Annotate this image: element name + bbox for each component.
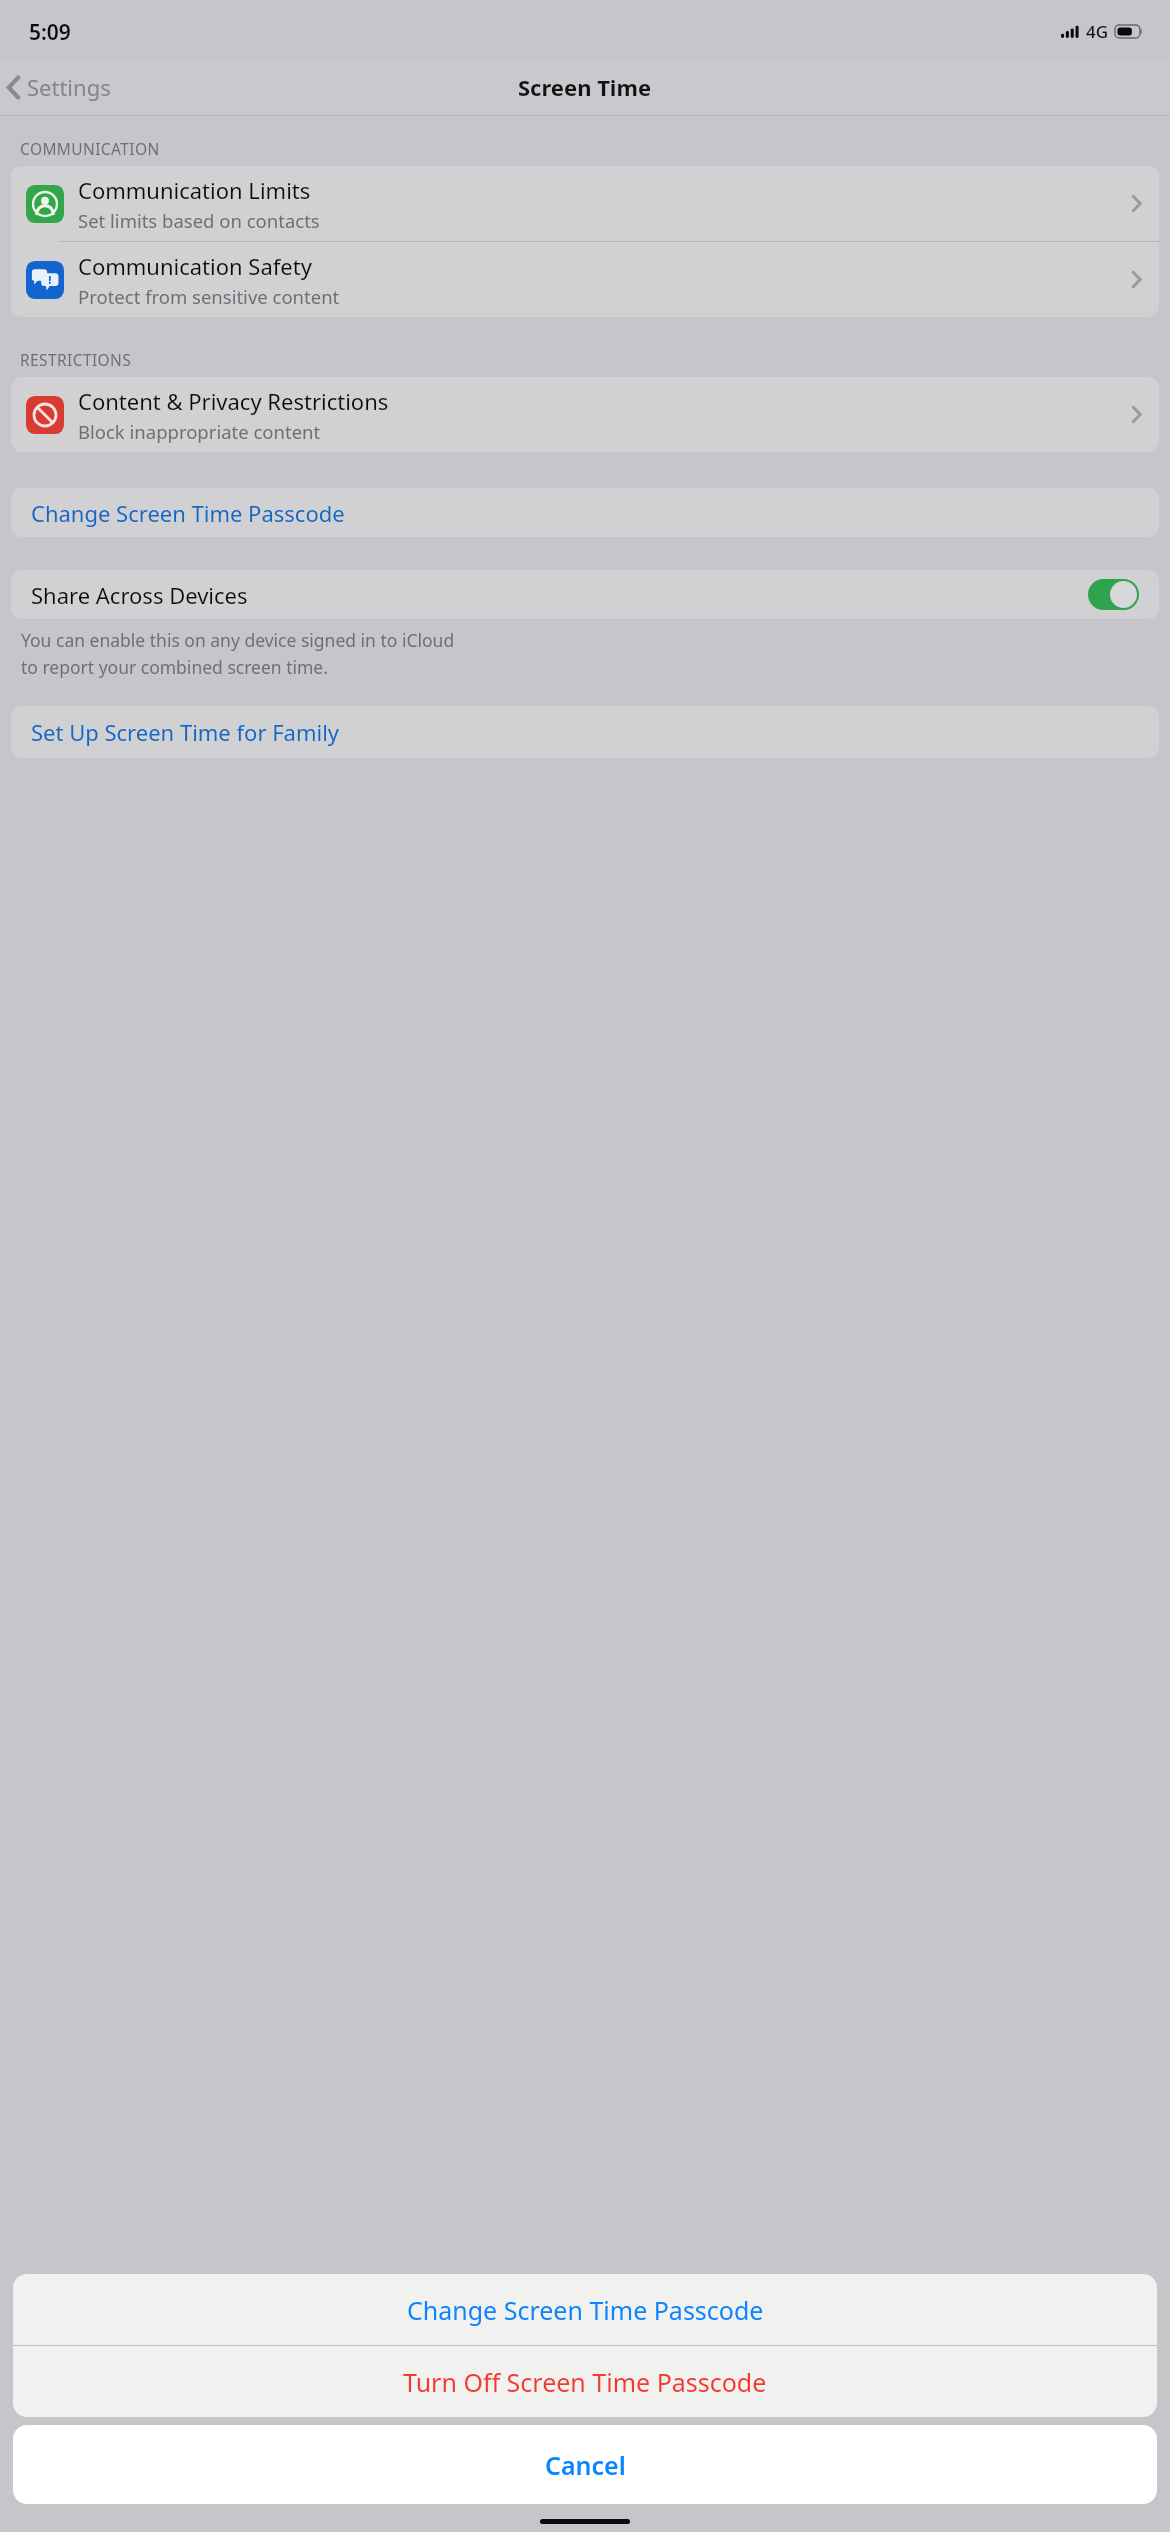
staticText: You can enable this on any device signed…	[21, 628, 455, 652]
staticText: RESTRICTIONS	[20, 349, 132, 370]
button[interactable]: Communication Safety	[11, 242, 1159, 317]
staticText: Communication Safety	[78, 251, 312, 281]
staticText: Set limits based on contacts	[78, 208, 320, 233]
staticText: Turn Off Screen Time Passcode	[403, 2365, 767, 2399]
staticText: Set Up Screen Time for Family	[31, 717, 340, 747]
staticText: COMMUNICATION	[20, 138, 160, 159]
staticText: Screen Time	[518, 72, 652, 102]
button[interactable]: Content & Privacy Restrictions	[11, 377, 1159, 452]
button[interactable]: Settings	[0, 68, 121, 106]
button[interactable]: Turn Off Screen Time Passcode	[13, 2346, 1157, 2417]
staticText: 4G	[1086, 20, 1109, 43]
staticText: 5:09	[29, 18, 71, 47]
staticText: Content & Privacy Restrictions	[78, 386, 389, 416]
button[interactable]: Share Across Devices	[11, 570, 1159, 619]
staticText: Share Across Devices	[31, 580, 248, 610]
staticText: Communication Limits	[78, 175, 311, 205]
staticText: Protect from sensitive content	[78, 284, 340, 309]
staticText: Change Screen Time Passcode	[31, 498, 345, 528]
button[interactable]: Set Up Screen Time for Family	[11, 706, 1159, 758]
staticText: Block inappropriate content	[78, 419, 321, 444]
button[interactable]: Change Screen Time Passcode	[11, 488, 1159, 537]
button[interactable]: Share Across Devices toggle, on	[1088, 579, 1139, 610]
staticText: to report your combined screen time.	[21, 655, 328, 679]
button[interactable]: Communication Limits	[11, 166, 1159, 241]
staticText: Settings	[27, 72, 111, 102]
button[interactable]: Cancel	[13, 2425, 1157, 2504]
button[interactable]: Change Screen Time Passcode	[13, 2274, 1157, 2345]
staticText: Change Screen Time Passcode	[407, 2293, 764, 2327]
staticText: Cancel	[545, 2448, 626, 2482]
